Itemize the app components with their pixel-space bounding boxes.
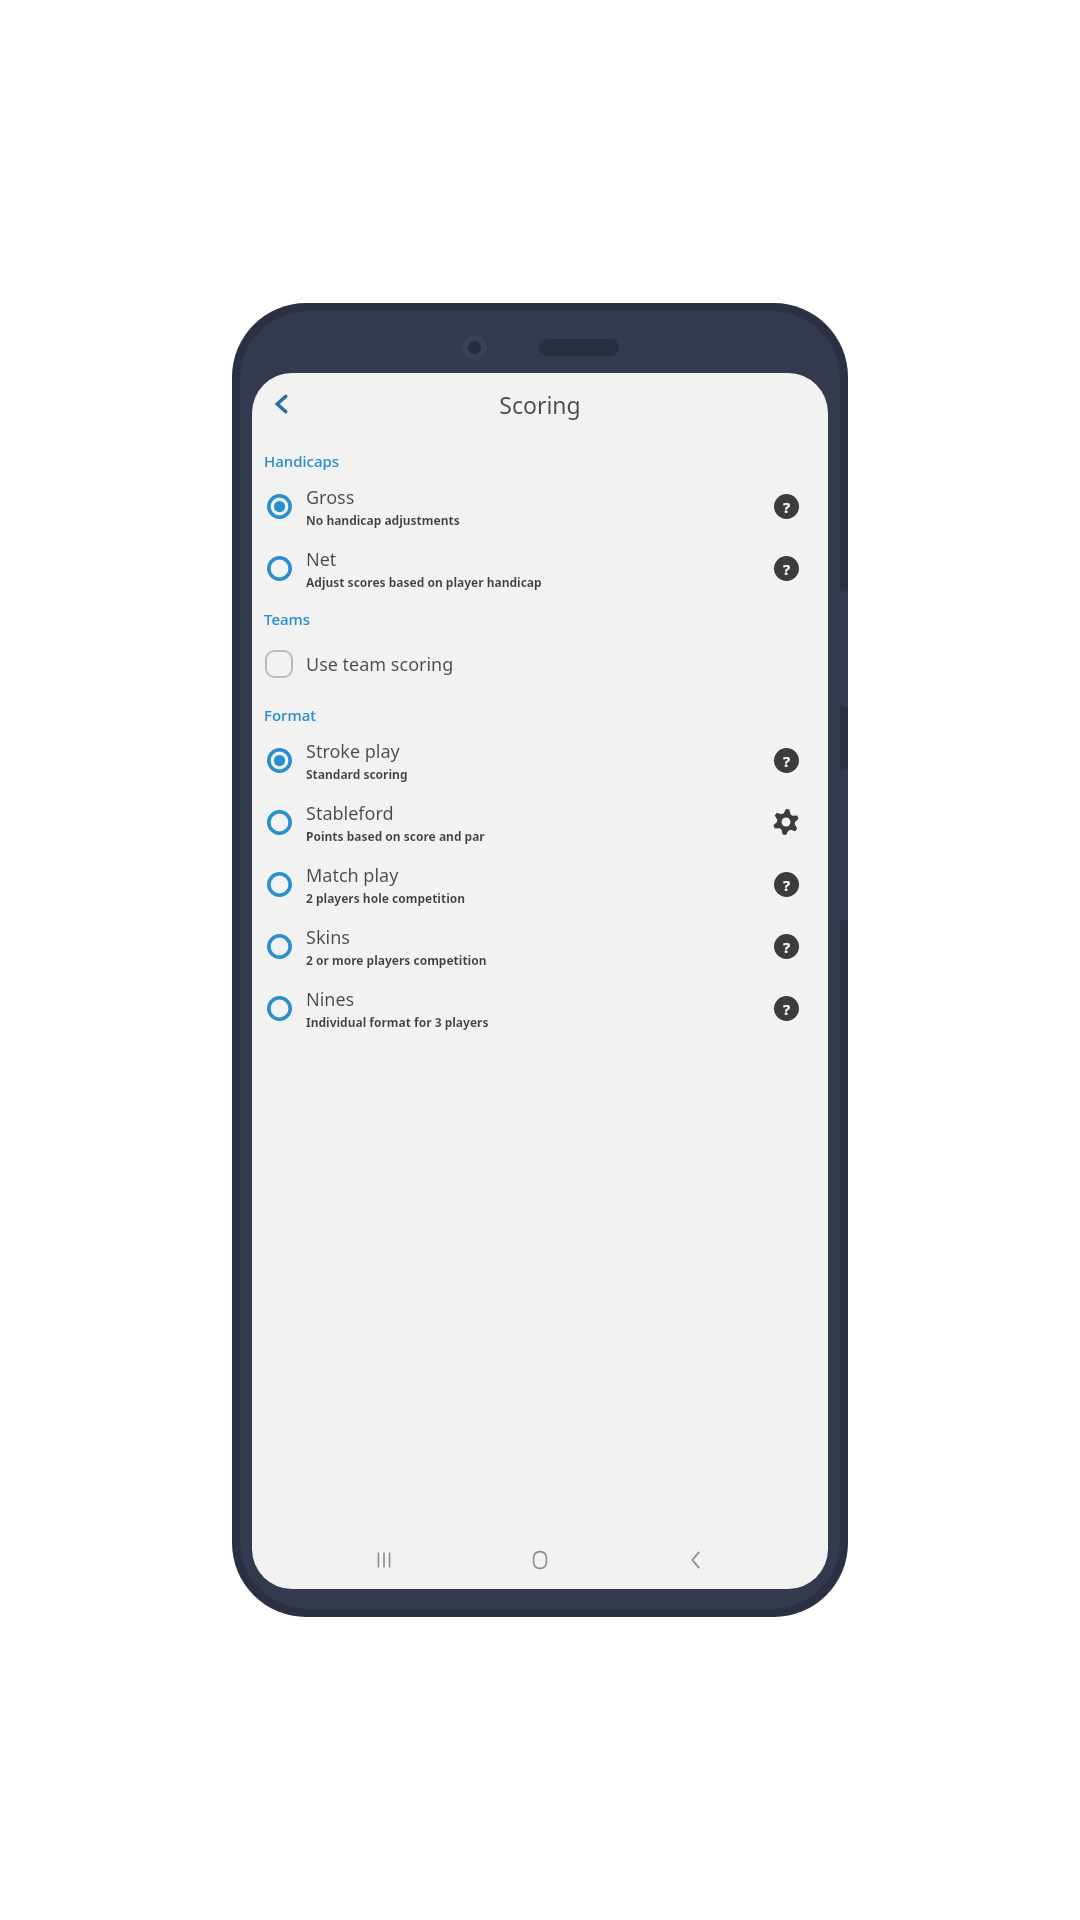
button[interactable]: Help xyxy=(766,486,806,526)
button[interactable]: Net xyxy=(252,537,828,599)
button[interactable]: Back xyxy=(258,380,306,428)
staticText: Adjust scores based on player handicap xyxy=(306,574,542,590)
staticText: No handicap adjustments xyxy=(306,512,460,528)
staticText: Stableford xyxy=(306,801,394,826)
staticText: Handicaps xyxy=(264,451,340,471)
button[interactable]: Stableford xyxy=(252,791,828,853)
button[interactable]: Help xyxy=(766,926,806,966)
button[interactable]: Match play xyxy=(252,853,828,915)
button[interactable]: Help xyxy=(766,740,806,780)
staticText: Match play xyxy=(306,863,399,888)
staticText: Stroke play xyxy=(306,739,400,764)
button[interactable]: Help xyxy=(766,988,806,1028)
button[interactable]: Help xyxy=(766,548,806,588)
staticText: Gross xyxy=(306,485,355,510)
staticText: Points based on score and par xyxy=(306,828,485,844)
staticText: Individual format for 3 players xyxy=(306,1014,489,1030)
button[interactable]: Recents xyxy=(360,1536,408,1584)
button[interactable]: Gross xyxy=(252,475,828,537)
staticText: ? xyxy=(783,751,791,771)
button[interactable]: Nines xyxy=(252,977,828,1039)
button[interactable]: Home xyxy=(516,1536,564,1584)
staticText: Teams xyxy=(264,609,311,629)
staticText: ? xyxy=(783,999,791,1019)
button[interactable]: Skins xyxy=(252,915,828,977)
staticText: Format xyxy=(264,705,316,725)
button[interactable]: Help xyxy=(766,864,806,904)
staticText: ? xyxy=(783,497,791,517)
staticText: ? xyxy=(783,559,791,579)
staticText: Use team scoring xyxy=(306,652,454,677)
button[interactable]: Back xyxy=(672,1536,720,1584)
staticText: ? xyxy=(783,937,791,957)
button[interactable]: Settings xyxy=(766,802,806,842)
staticText: 2 or more players competition xyxy=(306,952,487,968)
staticText: Skins xyxy=(306,925,350,950)
button[interactable]: Use team scoring xyxy=(252,633,828,695)
staticText: Standard scoring xyxy=(306,766,408,782)
staticText: Net xyxy=(306,547,337,572)
staticText: 2 players hole competition xyxy=(306,890,466,906)
button[interactable]: Stroke play xyxy=(252,729,828,791)
staticText: ? xyxy=(783,875,791,895)
staticText: Scoring xyxy=(499,389,581,420)
staticText: Nines xyxy=(306,987,355,1012)
